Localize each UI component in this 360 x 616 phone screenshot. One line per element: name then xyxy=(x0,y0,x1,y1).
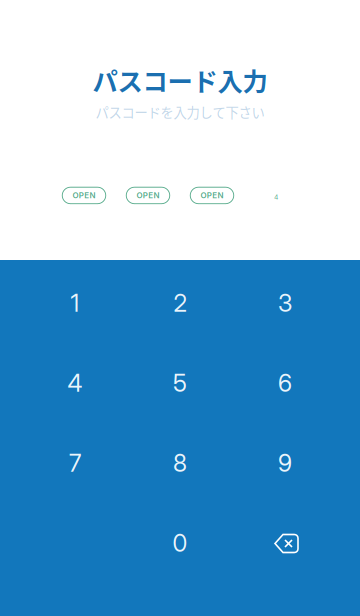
button[interactable]: 7 xyxy=(22,423,127,503)
staticText: 2 xyxy=(173,288,186,317)
button[interactable]: 6 xyxy=(232,343,337,423)
staticText: OPEN xyxy=(136,191,160,200)
staticText: 4 xyxy=(274,193,278,201)
staticText: 8 xyxy=(173,448,187,477)
button[interactable]: 5 xyxy=(127,343,232,423)
button[interactable]: 1 xyxy=(22,263,127,343)
staticText: 7 xyxy=(69,448,81,477)
button[interactable]: 4 xyxy=(22,343,127,423)
staticText: パスコード入力 xyxy=(92,62,267,98)
button[interactable]: 8 xyxy=(127,423,232,503)
staticText: 0 xyxy=(172,528,187,557)
staticText: OPEN xyxy=(200,191,224,200)
staticText: 1 xyxy=(70,288,79,317)
staticText: パスコードを入力して下さい xyxy=(95,102,264,122)
staticText: 5 xyxy=(173,368,187,397)
staticText: OPEN xyxy=(72,191,96,200)
staticText: 6 xyxy=(278,368,292,397)
button[interactable]: 0 xyxy=(127,503,232,583)
button[interactable]: 2 xyxy=(127,263,232,343)
button[interactable]: 3 xyxy=(232,263,337,343)
staticText: 9 xyxy=(278,448,292,477)
button[interactable]: Delete xyxy=(232,503,337,583)
button[interactable]: 9 xyxy=(232,423,337,503)
staticText: 4 xyxy=(67,368,82,397)
staticText: 3 xyxy=(278,288,292,317)
